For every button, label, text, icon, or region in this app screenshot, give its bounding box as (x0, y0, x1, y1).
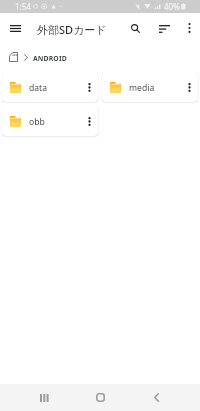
button[interactable]: data (2, 72, 98, 102)
staticText: ANDROID (33, 54, 67, 63)
staticText: media (129, 82, 181, 94)
staticText: obb (29, 116, 81, 128)
button[interactable]: Recent apps (26, 384, 62, 411)
button[interactable]: Navigation menu (4, 17, 27, 40)
button[interactable]: media (102, 72, 198, 102)
button[interactable]: Back (138, 384, 174, 411)
button[interactable]: obb (2, 106, 98, 136)
button[interactable]: SD card root (4, 48, 22, 66)
staticText: 外部SDカード (37, 22, 107, 37)
button[interactable]: Search (125, 18, 146, 39)
button[interactable]: More options for data (81, 73, 98, 101)
staticText: 1:54 (15, 1, 31, 12)
button[interactable]: More options for obb (81, 107, 98, 135)
button[interactable]: More options for media (181, 73, 198, 101)
button[interactable]: Home (82, 384, 118, 411)
staticText: data (29, 82, 81, 94)
staticText: 40% (164, 1, 180, 12)
button[interactable]: ANDROID (33, 54, 67, 63)
button[interactable]: More options (179, 18, 199, 38)
button[interactable]: Sort (154, 18, 175, 39)
